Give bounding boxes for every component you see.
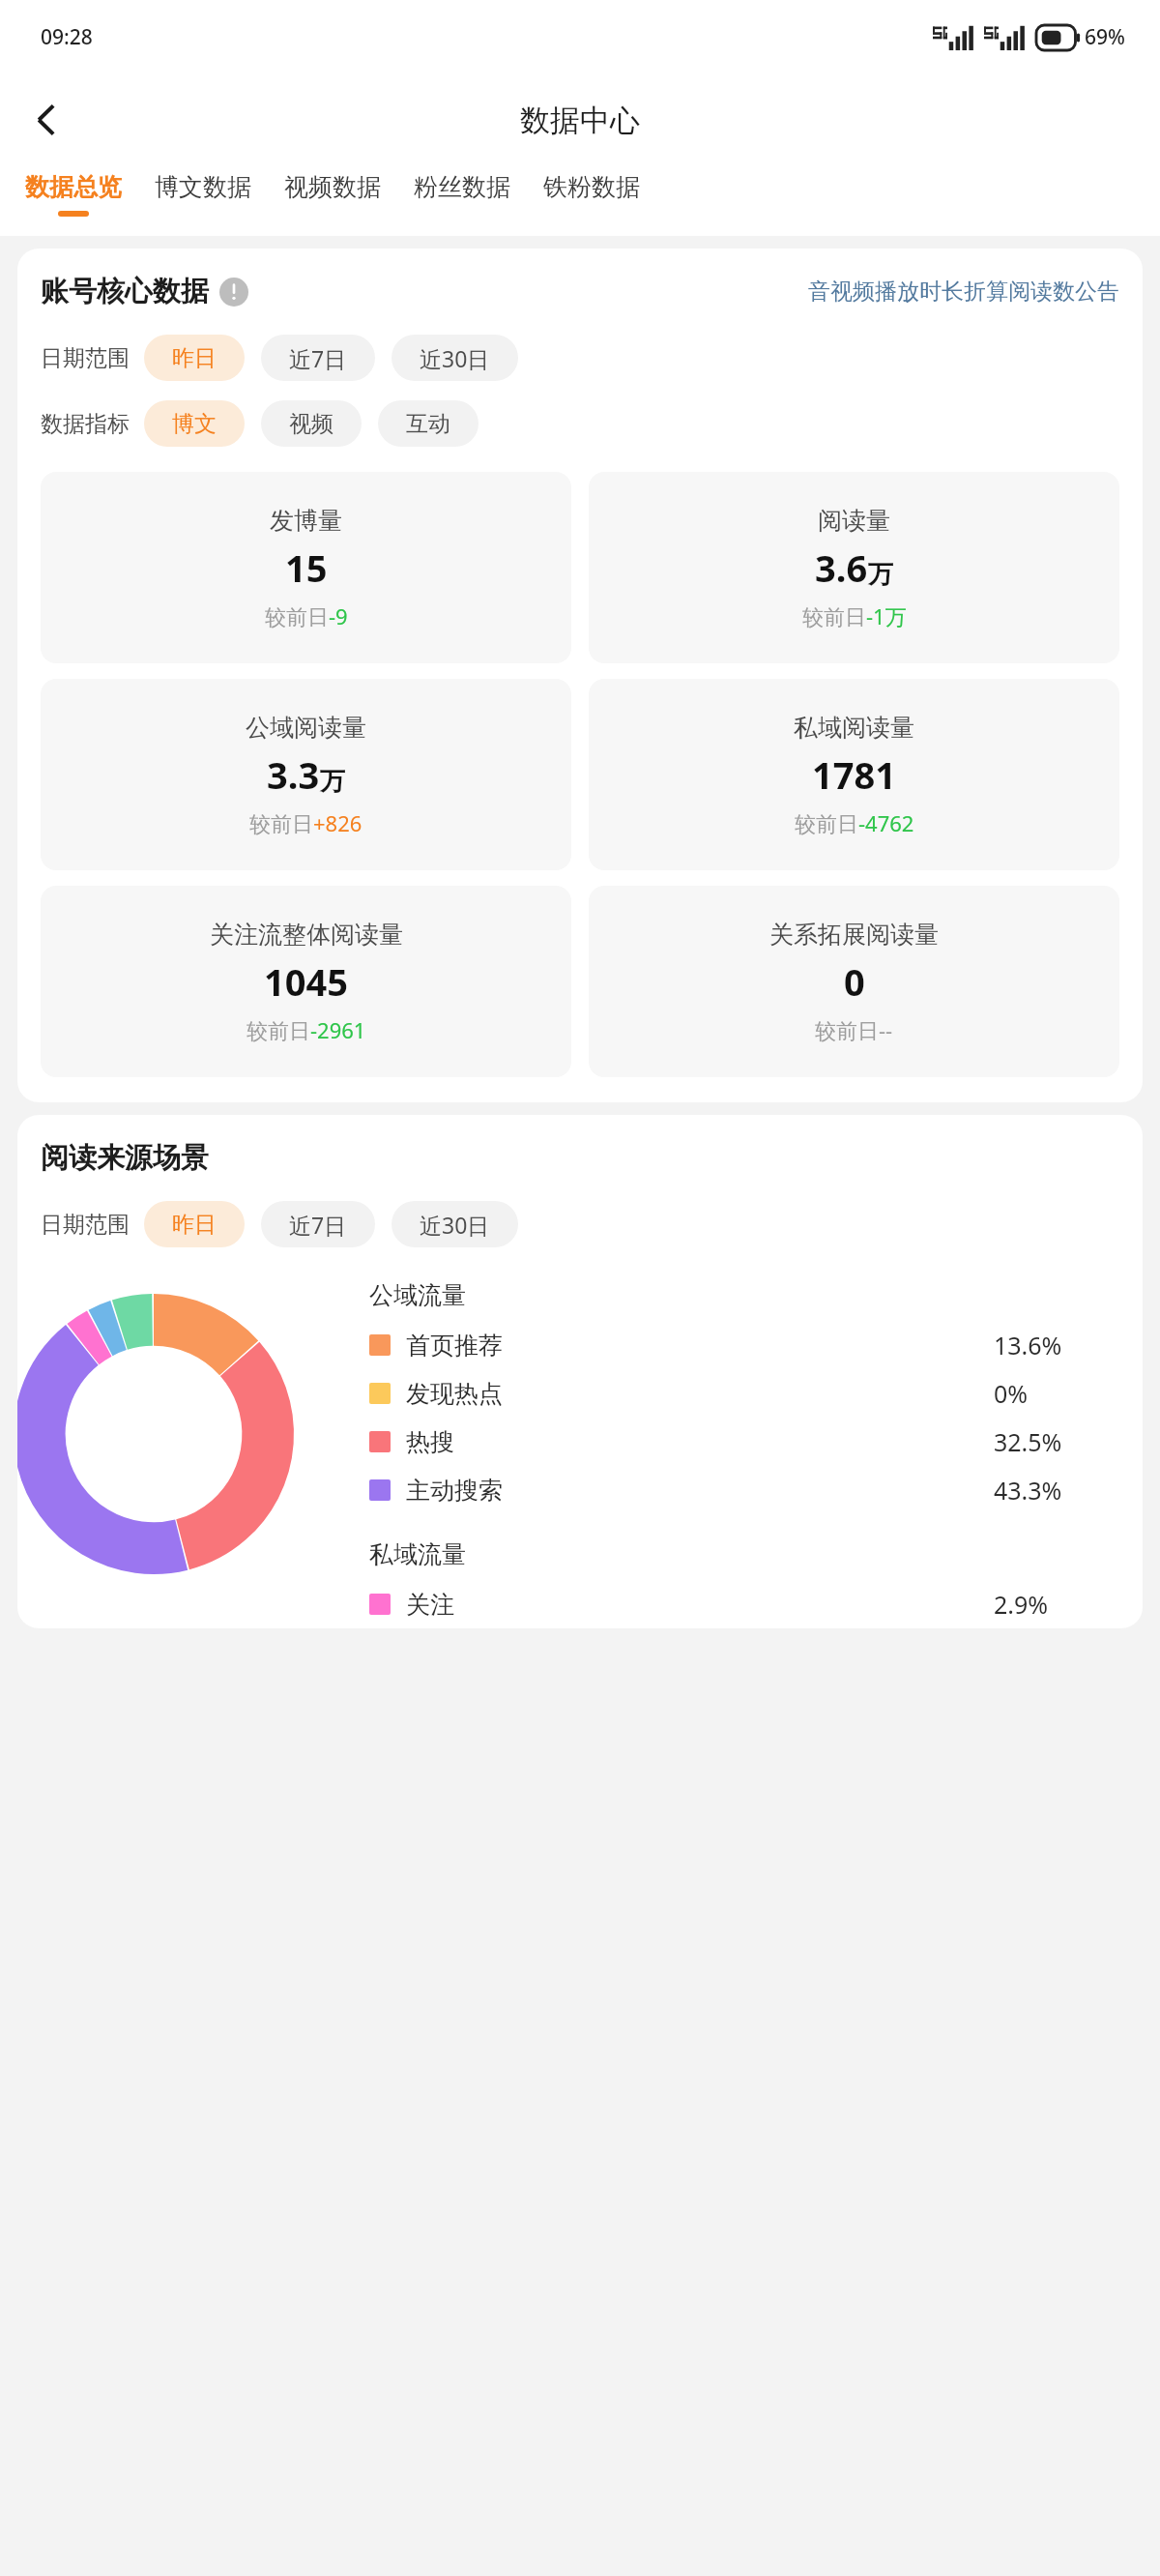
staticText: 较前日-1万 bbox=[802, 601, 907, 630]
staticText: 近7日 bbox=[289, 343, 347, 373]
button[interactable]: 发现热点 bbox=[369, 1369, 1119, 1418]
staticText: 较前日+826 bbox=[249, 808, 362, 837]
staticText: 账号核心数据 bbox=[41, 274, 209, 309]
staticText: 私域阅读量 bbox=[794, 713, 914, 743]
button[interactable]: 关注 bbox=[369, 1580, 1119, 1628]
staticText: 关注流整体阅读量 bbox=[210, 920, 403, 950]
button[interactable]: 视频 bbox=[261, 400, 362, 447]
staticText: 较前日-2961 bbox=[246, 1015, 366, 1044]
button[interactable]: 粉丝数据 bbox=[414, 166, 510, 211]
staticText: 3.6 bbox=[815, 542, 868, 593]
button[interactable]: 数据总览 bbox=[25, 166, 122, 217]
button[interactable]: 近30日 bbox=[391, 335, 518, 381]
button[interactable]: 关系拓展阅读量 bbox=[589, 886, 1119, 1077]
staticText: 数据总览 bbox=[25, 172, 122, 202]
staticText: 私域流量 bbox=[369, 1539, 466, 1569]
button[interactable]: 说明 bbox=[219, 278, 248, 307]
staticText: 近30日 bbox=[420, 1210, 490, 1240]
staticText: 09:28 bbox=[41, 23, 93, 51]
button[interactable]: 主动搜索 bbox=[369, 1466, 1119, 1514]
staticText: 较前日-- bbox=[815, 1015, 893, 1044]
staticText: 昨日 bbox=[172, 344, 217, 372]
staticText: 数据指标 bbox=[41, 410, 130, 438]
staticText: 较前日-4762 bbox=[795, 808, 914, 837]
staticText: 2.9% bbox=[994, 1588, 1049, 1621]
staticText: 热搜 bbox=[406, 1427, 454, 1457]
button[interactable]: 近7日 bbox=[261, 335, 375, 381]
staticText: 公域流量 bbox=[369, 1280, 466, 1310]
staticText: 0% bbox=[994, 1377, 1029, 1410]
staticText: 13.6% bbox=[994, 1329, 1062, 1361]
staticText: 15 bbox=[285, 542, 328, 593]
button[interactable]: 关注流整体阅读量 bbox=[41, 886, 571, 1077]
staticText: 日期范围 bbox=[41, 1211, 130, 1239]
button[interactable]: 互动 bbox=[378, 400, 478, 447]
staticText: 关系拓展阅读量 bbox=[769, 920, 939, 950]
staticText: 首页推荐 bbox=[406, 1331, 503, 1361]
staticText: 万 bbox=[320, 766, 345, 798]
staticText: 铁粉数据 bbox=[543, 172, 640, 202]
button[interactable]: 私域阅读量 bbox=[589, 679, 1119, 870]
button[interactable]: 博文数据 bbox=[155, 166, 251, 211]
staticText: 阅读量 bbox=[818, 506, 890, 536]
staticText: 关注 bbox=[406, 1590, 454, 1620]
button[interactable]: 视频数据 bbox=[284, 166, 381, 211]
staticText: 昨日 bbox=[172, 1211, 217, 1239]
staticText: 万 bbox=[868, 559, 893, 591]
button[interactable]: 博文 bbox=[144, 400, 245, 447]
button[interactable]: 公域阅读量 bbox=[41, 679, 571, 870]
button[interactable]: 阅读量 bbox=[589, 472, 1119, 663]
staticText: 主动搜索 bbox=[406, 1476, 503, 1506]
staticText: 近7日 bbox=[289, 1210, 347, 1240]
staticText: 博文数据 bbox=[155, 172, 251, 202]
staticText: 视频数据 bbox=[284, 172, 381, 202]
staticText: 发现热点 bbox=[406, 1379, 503, 1409]
staticText: 43.3% bbox=[994, 1474, 1062, 1507]
button[interactable]: 首页推荐 bbox=[369, 1321, 1119, 1369]
button[interactable]: 近30日 bbox=[391, 1201, 518, 1247]
staticText: 发博量 bbox=[270, 506, 342, 536]
staticText: 32.5% bbox=[994, 1425, 1062, 1458]
staticText: 公域阅读量 bbox=[246, 713, 366, 743]
staticText: 1781 bbox=[812, 749, 896, 800]
button[interactable]: 热搜 bbox=[369, 1418, 1119, 1466]
staticText: 0 bbox=[844, 956, 865, 1007]
button[interactable]: 昨日 bbox=[144, 335, 245, 381]
button[interactable]: 昨日 bbox=[144, 1201, 245, 1247]
staticText: 日期范围 bbox=[41, 344, 130, 372]
staticText: 视频 bbox=[289, 410, 333, 438]
button[interactable]: Back bbox=[15, 88, 79, 152]
staticText: 数据中心 bbox=[520, 102, 640, 139]
staticText: 1045 bbox=[264, 956, 348, 1007]
button[interactable]: 发博量 bbox=[41, 472, 571, 663]
staticText: 3.3 bbox=[267, 749, 320, 800]
staticText: 阅读来源场景 bbox=[41, 1140, 209, 1176]
staticText: 互动 bbox=[406, 410, 450, 438]
staticText: 较前日-9 bbox=[265, 601, 348, 630]
staticText: 近30日 bbox=[420, 343, 490, 373]
button[interactable]: 铁粉数据 bbox=[543, 166, 640, 211]
staticText: 粉丝数据 bbox=[414, 172, 510, 202]
button[interactable]: 音视频播放时长折算阅读数公告 bbox=[808, 278, 1119, 306]
staticText: 69% bbox=[1085, 23, 1125, 51]
button[interactable]: 近7日 bbox=[261, 1201, 375, 1247]
staticText: 博文 bbox=[172, 410, 217, 438]
